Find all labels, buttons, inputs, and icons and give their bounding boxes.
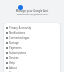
button[interactable]: Help [4, 60, 60, 65]
staticText: Subscriptions [9, 51, 27, 55]
button[interactable]: Privacy & security [4, 25, 60, 30]
staticText: Sign out [9, 71, 20, 72]
staticText: About [9, 66, 17, 70]
staticText: Connected apps [9, 36, 30, 40]
staticText: Manage your Google Acct [0, 9, 64, 13]
button[interactable]: Subscriptions [4, 50, 60, 55]
staticText: Notifications [9, 31, 25, 35]
button[interactable]: Devices [4, 55, 60, 60]
button[interactable]: Sign out [4, 70, 60, 72]
button[interactable]: Notifications [4, 30, 60, 35]
staticText: Privacy & security [9, 26, 32, 30]
staticText: Devices [9, 56, 19, 60]
button[interactable]: Payments [4, 45, 60, 50]
staticText: Help [9, 61, 15, 65]
staticText: username1234@gmail.com [0, 12, 64, 15]
button[interactable]: Storage [4, 40, 60, 45]
button[interactable]: Account avatar [18, 5, 23, 10]
button[interactable]: Connected apps [4, 35, 60, 40]
button[interactable]: About [4, 65, 60, 70]
staticText: Payments [9, 46, 22, 50]
staticText: Storage [9, 41, 19, 45]
